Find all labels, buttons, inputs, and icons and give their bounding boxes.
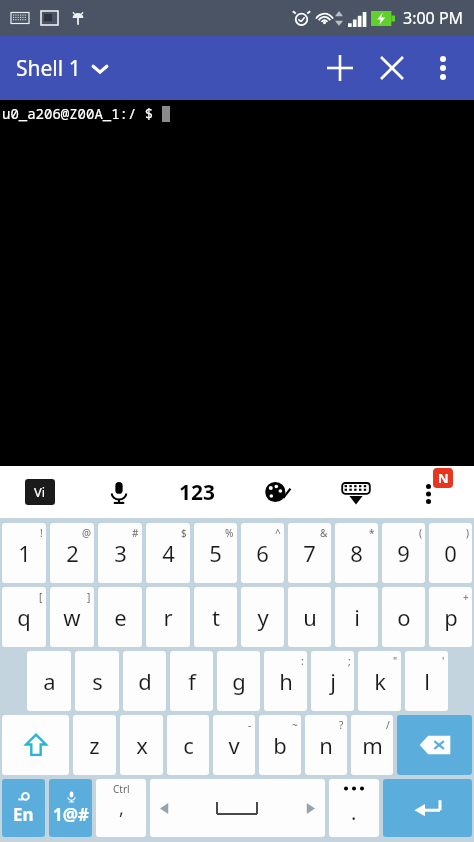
button[interactable]: z bbox=[73, 715, 116, 775]
button[interactable]: ) bbox=[429, 523, 472, 583]
staticText: g bbox=[232, 666, 246, 696]
button[interactable]: $ bbox=[146, 523, 190, 583]
button[interactable]: " bbox=[358, 651, 401, 711]
staticText: 2 bbox=[66, 538, 79, 568]
button[interactable]: y bbox=[241, 587, 284, 647]
button[interactable]: g bbox=[217, 651, 260, 711]
button[interactable]: e bbox=[98, 587, 142, 647]
button[interactable]: Close session bbox=[366, 42, 418, 94]
button[interactable]: : bbox=[264, 651, 307, 711]
staticText: p bbox=[444, 602, 458, 632]
staticText: m bbox=[362, 730, 383, 760]
staticText: n bbox=[319, 730, 333, 760]
button[interactable]: Ctrl bbox=[96, 779, 146, 837]
button[interactable]: [ bbox=[2, 587, 46, 647]
button[interactable]: ; bbox=[311, 651, 354, 711]
button[interactable]: Hide keyboard bbox=[316, 466, 395, 518]
staticText: 4 bbox=[162, 538, 175, 568]
button[interactable]: f bbox=[170, 651, 213, 711]
staticText: - bbox=[248, 718, 252, 732]
button[interactable]: c bbox=[167, 715, 209, 775]
staticText: k bbox=[374, 666, 386, 696]
button[interactable]: * bbox=[335, 523, 378, 583]
button[interactable] bbox=[2, 715, 69, 775]
staticText: + bbox=[463, 590, 469, 604]
button[interactable]: Theme bbox=[237, 466, 316, 518]
button[interactable] bbox=[150, 779, 325, 837]
staticText: h bbox=[279, 666, 293, 696]
staticText: Shell 1 bbox=[16, 54, 81, 83]
staticText: t bbox=[212, 602, 220, 632]
button[interactable]: % bbox=[194, 523, 237, 583]
button[interactable]: i bbox=[335, 587, 378, 647]
staticText: e bbox=[114, 602, 127, 632]
staticText: ^ bbox=[275, 526, 281, 540]
button[interactable]: ? bbox=[305, 715, 347, 775]
staticText: ! bbox=[40, 526, 43, 540]
button[interactable]: New session bbox=[314, 42, 366, 94]
button[interactable]: d bbox=[123, 651, 166, 711]
button[interactable]: Shell 1 bbox=[16, 54, 109, 83]
staticText: @ bbox=[82, 526, 91, 540]
button[interactable]: + bbox=[429, 587, 472, 647]
staticText: q bbox=[17, 602, 31, 632]
button[interactable]: ] bbox=[50, 587, 94, 647]
button[interactable]: x bbox=[120, 715, 163, 775]
button[interactable]: . bbox=[329, 779, 379, 837]
staticText: l bbox=[424, 666, 430, 696]
staticText: # bbox=[132, 526, 139, 540]
staticText: ~ bbox=[292, 718, 298, 732]
button[interactable]: ~ bbox=[259, 715, 301, 775]
button[interactable]: 123 bbox=[158, 466, 237, 518]
button[interactable] bbox=[383, 779, 472, 837]
button[interactable]: ' bbox=[405, 651, 448, 711]
button[interactable]: En bbox=[2, 779, 45, 837]
staticText: ' bbox=[442, 654, 445, 668]
button[interactable]: a bbox=[27, 651, 71, 711]
staticText: " bbox=[393, 654, 398, 668]
staticText: 3 bbox=[114, 538, 127, 568]
button[interactable]: t bbox=[194, 587, 237, 647]
staticText: 1@# bbox=[53, 803, 89, 826]
button[interactable]: 1@# bbox=[49, 779, 92, 837]
button[interactable]: @ bbox=[50, 523, 94, 583]
button[interactable]: More bbox=[395, 466, 474, 518]
button[interactable]: r bbox=[146, 587, 190, 647]
staticText: v bbox=[228, 730, 240, 760]
staticText: u bbox=[303, 602, 317, 632]
staticText: , bbox=[119, 796, 124, 821]
staticText: ( bbox=[419, 526, 422, 540]
staticText: i bbox=[354, 602, 360, 632]
staticText: 9 bbox=[397, 538, 410, 568]
staticText: Vi bbox=[34, 483, 46, 501]
staticText: 8 bbox=[350, 538, 363, 568]
staticText: % bbox=[225, 526, 234, 540]
staticText: 5 bbox=[209, 538, 222, 568]
staticText: & bbox=[320, 526, 328, 540]
staticText: 6 bbox=[256, 538, 269, 568]
staticText: . bbox=[351, 799, 357, 826]
staticText: ) bbox=[466, 526, 469, 540]
button[interactable]: u bbox=[288, 587, 331, 647]
staticText: [ bbox=[39, 590, 43, 604]
button[interactable]: - bbox=[213, 715, 255, 775]
staticText: w bbox=[63, 602, 81, 632]
button[interactable]: More options bbox=[418, 43, 468, 93]
staticText: * bbox=[369, 526, 375, 540]
button[interactable]: & bbox=[288, 523, 331, 583]
button[interactable]: Voice input bbox=[79, 466, 158, 518]
staticText: 3:00 PM bbox=[403, 7, 464, 29]
button[interactable]: Vi mode bbox=[0, 466, 79, 518]
button[interactable]: ! bbox=[2, 523, 46, 583]
button[interactable]: u0_a206@Z00A_1:/ $ bbox=[0, 100, 474, 466]
staticText: N bbox=[438, 469, 449, 487]
staticText: $ bbox=[181, 526, 187, 540]
button[interactable]: o bbox=[382, 587, 425, 647]
button[interactable]: s bbox=[75, 651, 119, 711]
button[interactable]: / bbox=[351, 715, 393, 775]
button[interactable]: ( bbox=[382, 523, 425, 583]
button[interactable]: # bbox=[98, 523, 142, 583]
staticText: o bbox=[397, 602, 411, 632]
button[interactable] bbox=[397, 715, 472, 775]
button[interactable]: ^ bbox=[241, 523, 284, 583]
